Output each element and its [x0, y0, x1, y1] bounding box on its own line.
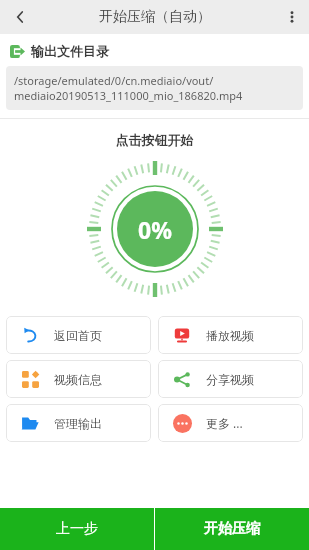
staticText: 分享视频: [206, 372, 254, 387]
staticText: 开始压缩: [204, 520, 260, 538]
button[interactable]: Share video: [158, 360, 303, 398]
staticText: 视频信息: [54, 372, 102, 387]
button[interactable]: 开始压缩: [155, 508, 309, 550]
staticText: 输出文件目录: [31, 43, 109, 59]
staticText: 更多 ...: [206, 415, 243, 431]
staticText: /storage/emulated/0/cn.mediaio/vout/ med…: [14, 73, 243, 103]
staticText: 播放视频: [206, 328, 254, 343]
button[interactable]: Back: [0, 0, 40, 34]
staticText: 上一步: [56, 520, 98, 538]
button[interactable]: Play video: [158, 316, 303, 354]
button[interactable]: Video info: [6, 360, 151, 398]
staticText: 点击按钮开始: [0, 132, 309, 148]
staticText: 0%: [138, 214, 172, 245]
button[interactable]: More options: [275, 0, 309, 34]
staticText: 返回首页: [54, 328, 102, 343]
button[interactable]: Manage output: [6, 404, 151, 442]
staticText: 开始压缩（自动）: [99, 8, 211, 26]
staticText: 管理输出: [54, 416, 102, 431]
button[interactable]: Back to home: [6, 316, 151, 354]
button[interactable]: 上一步: [0, 508, 154, 550]
button[interactable]: More: [158, 404, 303, 442]
